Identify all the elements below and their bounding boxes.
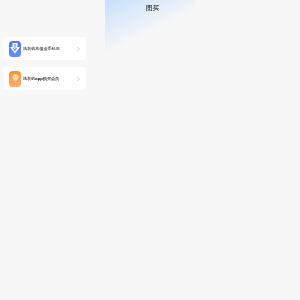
button[interactable]: Download [3, 37, 86, 60]
staticText: 洗衣机充值金币钻石 [23, 46, 60, 51]
staticText: 图买 [146, 4, 160, 12]
other: Download [11, 43, 19, 53]
button[interactable]: Membership [3, 67, 86, 90]
staticText: 洗衣机充值金币钻石 [23, 46, 60, 51]
staticText: 图买 [146, 4, 160, 12]
other: Membership [12, 74, 19, 82]
staticText: 洗衣机app购买会员 [23, 76, 60, 82]
staticText: 洗衣机app购买会员 [23, 76, 60, 82]
